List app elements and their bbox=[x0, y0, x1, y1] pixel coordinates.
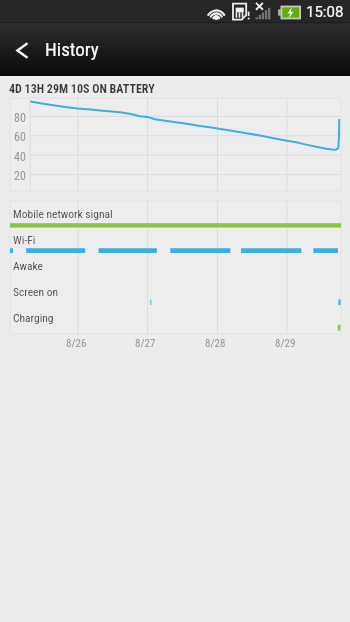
staticText: 20 bbox=[14, 169, 26, 183]
staticText: Charging bbox=[13, 311, 54, 324]
staticText: Screen on bbox=[13, 285, 59, 298]
staticText: 8/28 bbox=[205, 337, 226, 350]
staticText: Wi-Fi bbox=[13, 233, 36, 246]
staticText: 8/29 bbox=[275, 337, 296, 350]
staticText: 40 bbox=[14, 150, 26, 164]
staticText: 8/26 bbox=[66, 337, 87, 350]
staticText: History bbox=[45, 38, 99, 60]
staticText: 8/27 bbox=[135, 337, 156, 350]
staticText: 80 bbox=[14, 111, 26, 125]
staticText: Awake bbox=[13, 259, 43, 272]
button[interactable]: Back bbox=[0, 22, 44, 76]
staticText: 4D 13H 29M 10S ON BATTERY bbox=[9, 82, 155, 96]
staticText: 60 bbox=[14, 130, 26, 144]
staticText: 15:08 bbox=[306, 3, 344, 21]
staticText: Mobile network signal bbox=[13, 207, 113, 220]
